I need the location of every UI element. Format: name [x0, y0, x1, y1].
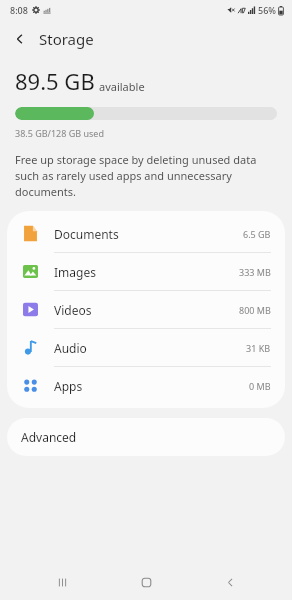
staticText: 333 MB [239, 266, 271, 278]
staticText: available [99, 79, 145, 94]
staticText: 89.5 GB [15, 66, 95, 96]
staticText: 0 MB [249, 380, 271, 392]
staticText: Documents [54, 226, 119, 242]
button[interactable]: Images [7, 253, 285, 290]
button[interactable]: Audio [7, 329, 285, 366]
staticText: 31 KB [246, 342, 271, 354]
staticText: Apps [54, 378, 83, 394]
staticText: 6.5 GB [243, 228, 271, 240]
staticText: 800 MB [239, 304, 271, 316]
staticText: Audio [54, 340, 87, 356]
staticText: 8:08 [10, 4, 28, 16]
staticText: 56% [258, 4, 276, 16]
button[interactable]: Back [6, 25, 34, 53]
button[interactable]: Advanced [7, 418, 285, 456]
staticText: Videos [54, 302, 92, 318]
button[interactable]: Apps [7, 367, 285, 404]
staticText: Images [54, 264, 96, 280]
staticText: Storage [39, 29, 94, 49]
button[interactable]: Documents [7, 215, 285, 252]
button[interactable]: Back [208, 564, 252, 600]
button[interactable]: Recents [40, 564, 84, 600]
button[interactable]: Home [124, 564, 168, 600]
button[interactable]: Videos [7, 291, 285, 328]
staticText: 38.5 GB/128 GB used [15, 127, 104, 139]
staticText: Free up storage space by deleting unused… [15, 152, 277, 199]
staticText: Advanced [21, 429, 77, 445]
